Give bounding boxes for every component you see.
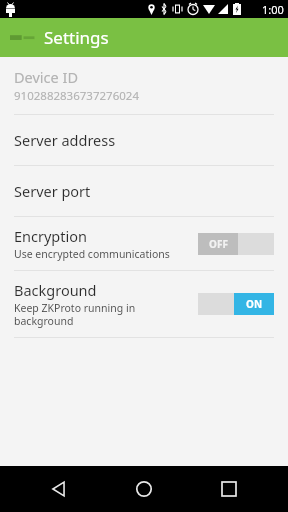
button[interactable]: Toggle off (198, 233, 274, 255)
staticText: Settings (44, 26, 109, 49)
staticText: Server port (14, 181, 91, 201)
staticText: OFF (209, 237, 228, 251)
staticText: Server address (14, 130, 116, 150)
staticText: Use encrypted communications (14, 247, 170, 261)
staticText: ON (246, 297, 263, 311)
button[interactable]: Server address (0, 115, 288, 165)
button[interactable]: Device ID (0, 57, 288, 114)
staticText: Encryption (14, 226, 87, 246)
button[interactable]: Back (33, 466, 85, 512)
staticText: Background (14, 280, 97, 300)
staticText: Keep ZKProto running in background (14, 301, 136, 328)
staticText: 9102882836737276024 (14, 88, 139, 104)
staticText: Device ID (14, 67, 78, 87)
button[interactable]: Background (0, 271, 288, 337)
staticText: 1:00 (262, 2, 284, 17)
button[interactable]: Recent apps (203, 466, 255, 512)
button[interactable]: Toggle on (198, 293, 274, 315)
button[interactable]: Server port (0, 166, 288, 216)
button[interactable]: Encryption (0, 217, 288, 270)
button[interactable]: Home (118, 466, 170, 512)
